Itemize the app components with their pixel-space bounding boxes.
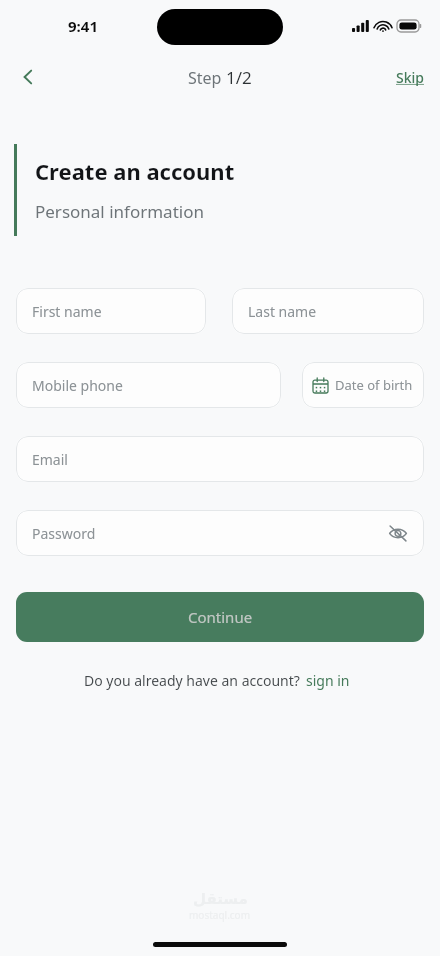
staticText: Skip bbox=[396, 68, 424, 87]
button[interactable]: Last name bbox=[232, 288, 424, 334]
staticText: mostaql.com bbox=[189, 908, 251, 922]
button[interactable]: Show password bbox=[380, 515, 416, 551]
staticText: First name bbox=[32, 302, 102, 321]
staticText: Email bbox=[32, 450, 68, 469]
staticText: sign in bbox=[306, 671, 350, 690]
staticText: Do you already have an account? bbox=[84, 671, 300, 690]
staticText: Create an account bbox=[35, 156, 235, 186]
button[interactable]: Back bbox=[6, 55, 50, 99]
button[interactable]: Continue bbox=[16, 592, 424, 642]
button[interactable]: Password bbox=[16, 510, 424, 556]
staticText: Mobile phone bbox=[32, 376, 123, 395]
button[interactable]: Email bbox=[16, 436, 424, 482]
staticText: Step bbox=[188, 67, 226, 89]
staticText: Password bbox=[32, 524, 96, 543]
staticText: مستقل bbox=[193, 890, 248, 907]
staticText: Continue bbox=[188, 607, 253, 627]
staticText: Personal information bbox=[35, 200, 204, 223]
staticText: 9:41 bbox=[68, 16, 98, 36]
button[interactable]: Skip bbox=[390, 62, 430, 93]
staticText: Last name bbox=[248, 302, 317, 321]
button[interactable]: First name bbox=[16, 288, 206, 334]
button[interactable]: Mobile phone bbox=[16, 362, 281, 408]
button[interactable]: sign in bbox=[300, 668, 356, 693]
button[interactable]: Date of birth bbox=[302, 362, 424, 408]
staticText: Date of birth bbox=[335, 376, 413, 394]
staticText: 1/2 bbox=[226, 66, 252, 89]
